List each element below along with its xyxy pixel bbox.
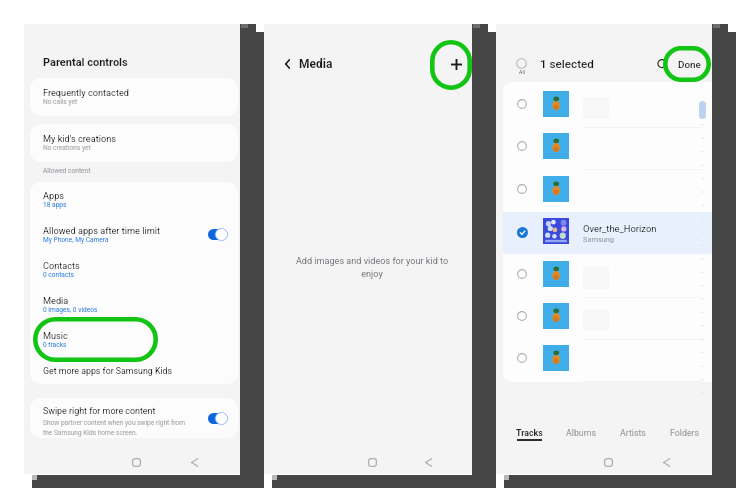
staticText: Swipe right for more content [43, 406, 156, 416]
button[interactable]: Back [655, 451, 677, 473]
staticText: My Phone, My Camera [43, 236, 109, 244]
button[interactable]: Contacts [30, 252, 238, 287]
staticText: Contacts [43, 260, 80, 271]
staticText: Music [43, 330, 68, 341]
button[interactable]: Home [125, 451, 147, 473]
staticText: All [519, 69, 525, 75]
button[interactable]: Over_the_Horizon [503, 212, 712, 254]
staticText: No creations yet [43, 144, 91, 152]
button[interactable]: Allowed apps after time limit [30, 217, 238, 252]
button[interactable]: Swipe right for more content [30, 398, 238, 438]
staticText: Artists [620, 428, 646, 438]
button[interactable]: Music [30, 322, 238, 357]
staticText: 0 contacts [43, 271, 74, 279]
staticText: Apps [43, 190, 65, 201]
staticText: Get more apps for Samsung Kids [43, 366, 173, 376]
button[interactable]: Tracks [503, 428, 555, 454]
button[interactable] [503, 87, 712, 129]
staticText: Parental controls [43, 56, 128, 69]
button[interactable]: Search [651, 53, 673, 75]
button[interactable]: Add media [443, 51, 469, 77]
staticText: Allowed content [43, 167, 91, 175]
staticText: Media [299, 57, 333, 71]
staticText: Show partner content when you swipe righ… [43, 419, 185, 436]
staticText: 1 selected [540, 57, 594, 71]
staticText: Tracks [516, 428, 543, 438]
button[interactable]: Back [183, 451, 205, 473]
button[interactable] [503, 299, 712, 341]
button[interactable]: Back [417, 451, 439, 473]
staticText: Over_the_Horizon [583, 223, 657, 234]
staticText: Done [678, 59, 701, 71]
staticText: Allowed apps after time limit [43, 225, 160, 236]
button[interactable]: Artists [607, 428, 659, 454]
button[interactable]: Media [30, 287, 238, 322]
staticText: Samsung [583, 235, 615, 244]
button[interactable] [503, 172, 712, 214]
button[interactable]: Apps [30, 182, 238, 217]
button[interactable] [503, 341, 712, 382]
button[interactable]: Folders [659, 428, 711, 454]
staticText: My kid's creations [43, 133, 116, 144]
button[interactable]: Select all [516, 58, 527, 75]
staticText: Frequently contacted [43, 87, 129, 98]
staticText: Albums [566, 428, 596, 438]
button[interactable]: Done [674, 54, 705, 76]
staticText: Media [43, 295, 69, 306]
button[interactable]: Back [274, 51, 300, 77]
staticText: 18 apps [43, 201, 67, 209]
button[interactable]: Home [361, 451, 383, 473]
staticText: No calls yet [43, 98, 78, 106]
staticText: 0 tracks [43, 341, 67, 349]
button[interactable]: Toggle on [208, 413, 227, 424]
staticText: 0 images, 0 videos [43, 306, 98, 314]
button[interactable] [503, 257, 712, 299]
button[interactable]: Toggle on [208, 229, 227, 240]
button[interactable]: Get more apps for Samsung Kids [30, 357, 238, 384]
button[interactable] [503, 129, 712, 171]
button[interactable]: Albums [555, 428, 607, 454]
staticText: Folders [670, 428, 700, 438]
staticText: Add images and videos for your kid to en… [292, 256, 452, 279]
button[interactable]: Home [597, 451, 619, 473]
